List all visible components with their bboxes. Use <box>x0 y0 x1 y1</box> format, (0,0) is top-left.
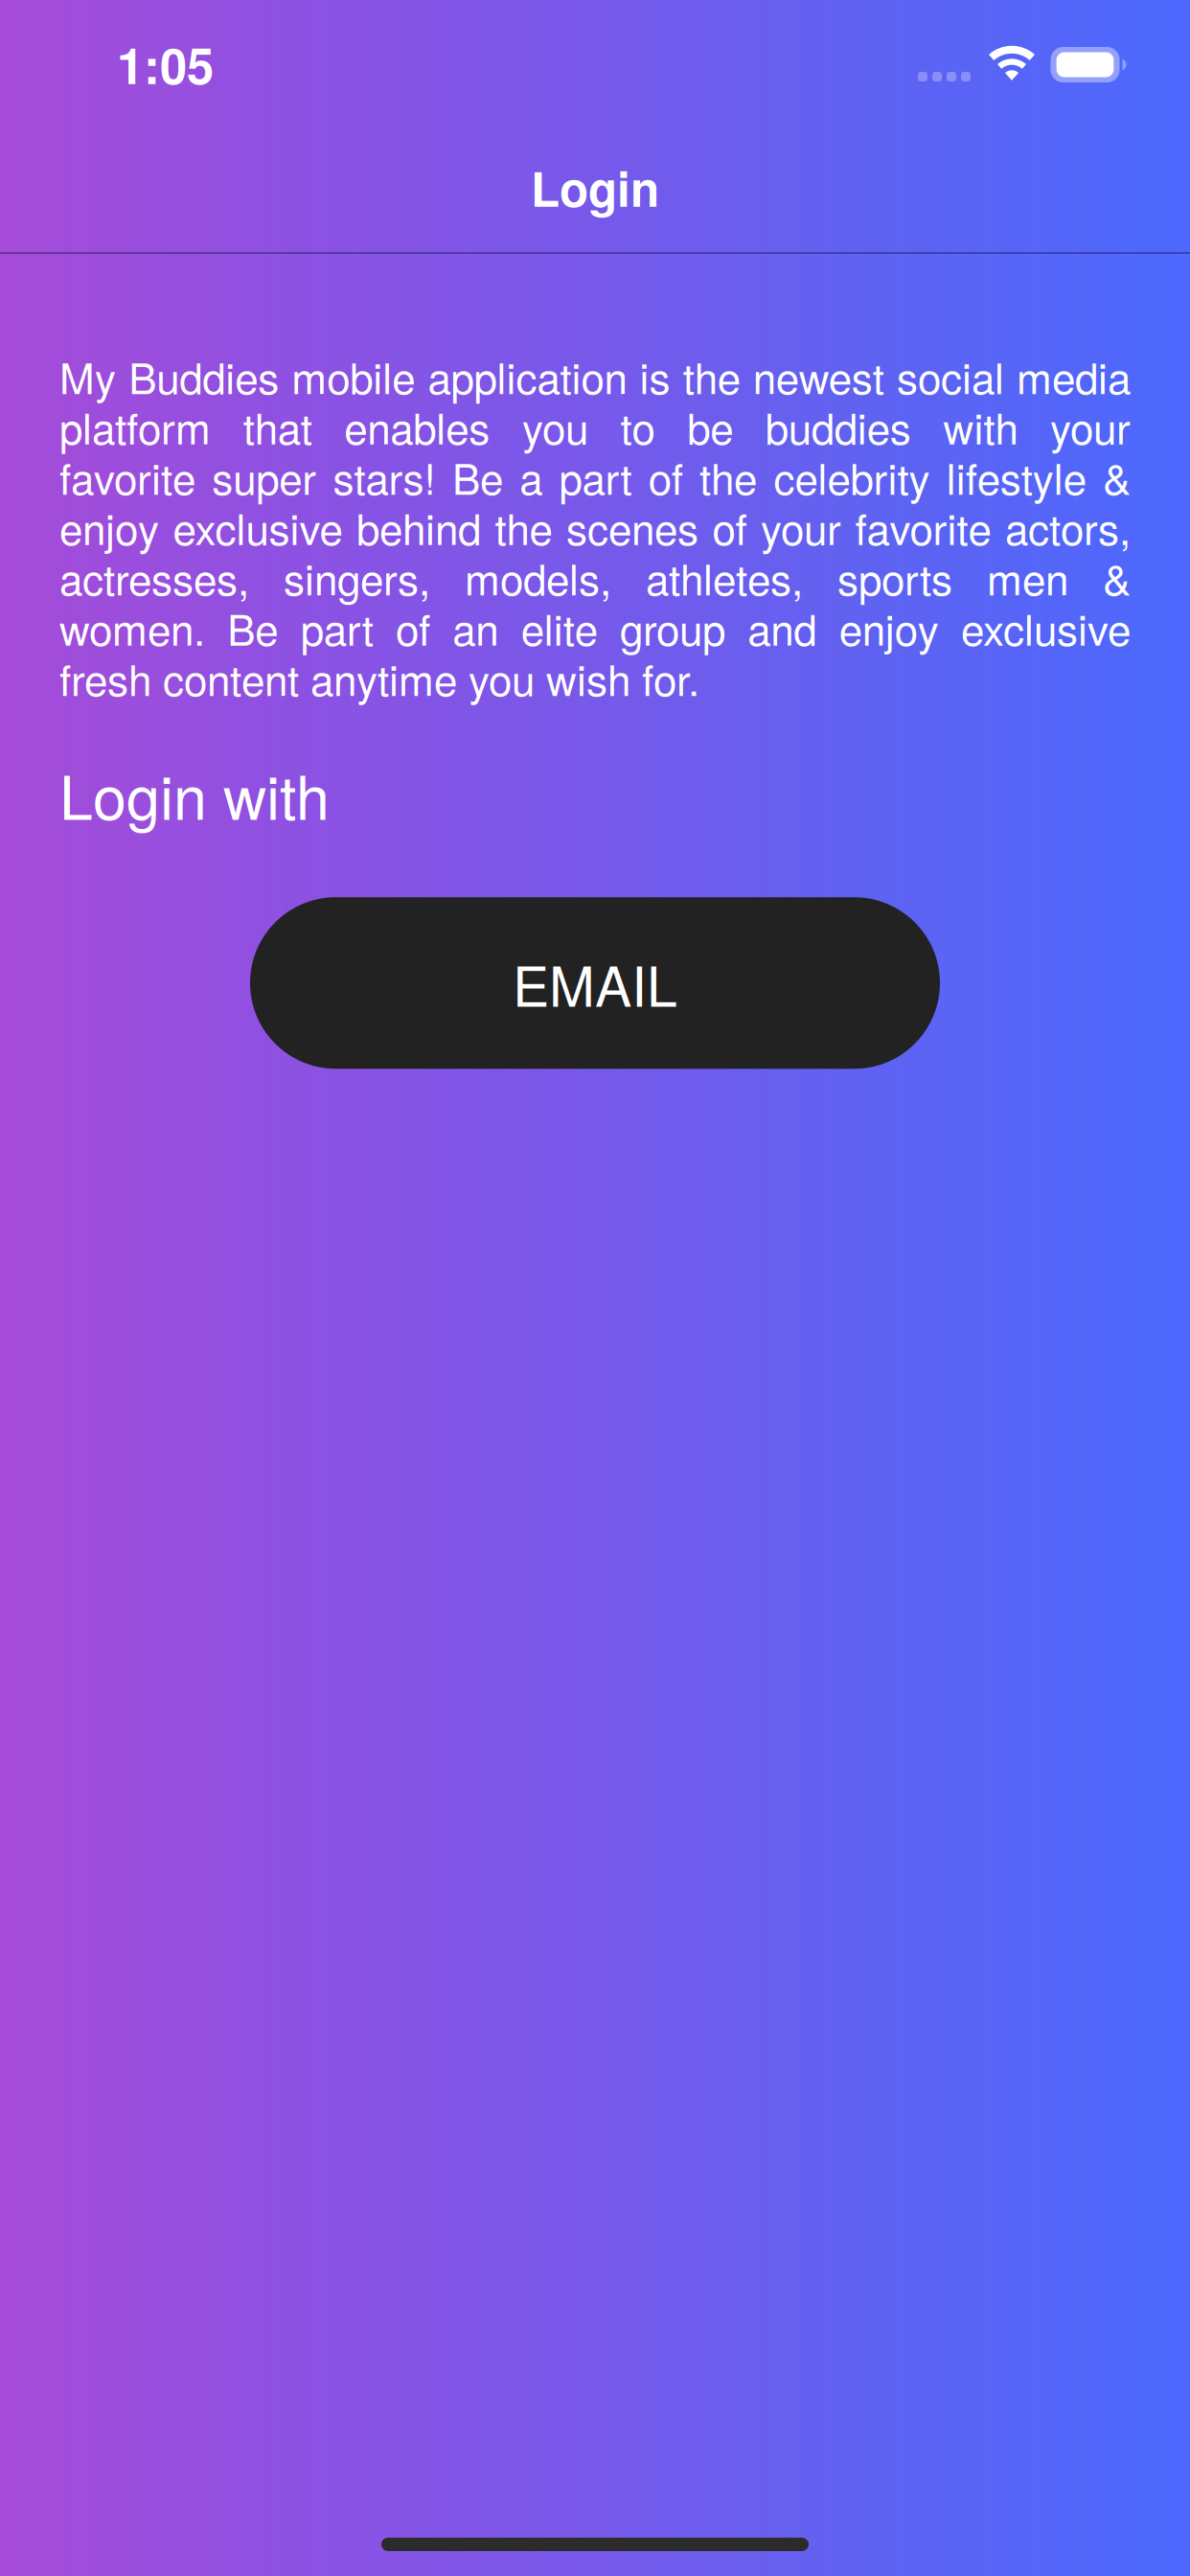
staticText: actresses, <box>59 547 249 607</box>
staticText: part <box>559 446 632 507</box>
staticText: part <box>301 597 373 658</box>
staticText: Be <box>452 446 503 507</box>
staticText: Buddies <box>128 346 279 406</box>
staticText: lifestyle <box>946 446 1086 507</box>
staticText: a <box>519 446 542 507</box>
staticText: & <box>1103 446 1131 507</box>
staticText: of <box>712 497 747 557</box>
staticText: with <box>943 396 1018 456</box>
staticText: application <box>428 346 627 406</box>
staticText: & <box>1103 547 1131 607</box>
staticText: stars! <box>333 446 436 507</box>
staticText: actors, <box>1005 497 1131 557</box>
staticText: mobile <box>291 346 415 406</box>
staticText: the <box>495 497 552 557</box>
staticText: My <box>59 346 116 406</box>
staticText: the <box>700 446 757 507</box>
staticText: of <box>396 597 430 658</box>
staticText: your <box>761 497 841 557</box>
staticText: you <box>522 396 588 456</box>
staticText: Login <box>531 154 659 221</box>
staticText: EMAIL <box>513 944 677 1022</box>
staticText: be <box>687 396 733 456</box>
staticText: favorite <box>855 497 991 557</box>
staticText: your <box>1050 396 1131 456</box>
staticText: of <box>648 446 683 507</box>
staticText: super <box>212 446 316 507</box>
staticText: models, <box>465 547 611 607</box>
staticText: that <box>243 396 312 456</box>
staticText: athletes, <box>646 547 803 607</box>
staticText: exclusive <box>173 497 343 557</box>
staticText: favorite <box>59 446 195 507</box>
staticText: singers, <box>284 547 430 607</box>
staticText: exclusive <box>961 597 1131 658</box>
staticText: scenes <box>566 497 698 557</box>
staticText: elite <box>521 597 598 658</box>
staticText: an <box>453 597 499 658</box>
staticText: Be <box>227 597 278 658</box>
staticText: enables <box>344 396 490 456</box>
staticText: platform <box>59 396 211 456</box>
staticText: fresh content anytime you wish for. <box>59 648 699 708</box>
staticText: media <box>1017 346 1131 406</box>
staticText: and <box>748 597 817 658</box>
staticText: Login with <box>59 751 330 837</box>
staticText: 1:05 <box>117 29 214 99</box>
staticText: is <box>640 346 670 406</box>
staticText: to <box>620 396 655 456</box>
staticText: enjoy <box>839 597 939 658</box>
staticText: social <box>897 346 1004 406</box>
staticText: newest <box>753 346 884 406</box>
staticText: celebrity <box>774 446 930 507</box>
staticText: men <box>987 547 1068 607</box>
staticText: sports <box>837 547 952 607</box>
button[interactable]: EMAIL <box>250 897 940 1069</box>
staticText: women. <box>59 597 205 658</box>
staticText: group <box>620 597 725 658</box>
staticText: behind <box>356 497 481 557</box>
staticText: the <box>683 346 740 406</box>
staticText: enjoy <box>59 497 159 557</box>
staticText: buddies <box>765 396 911 456</box>
